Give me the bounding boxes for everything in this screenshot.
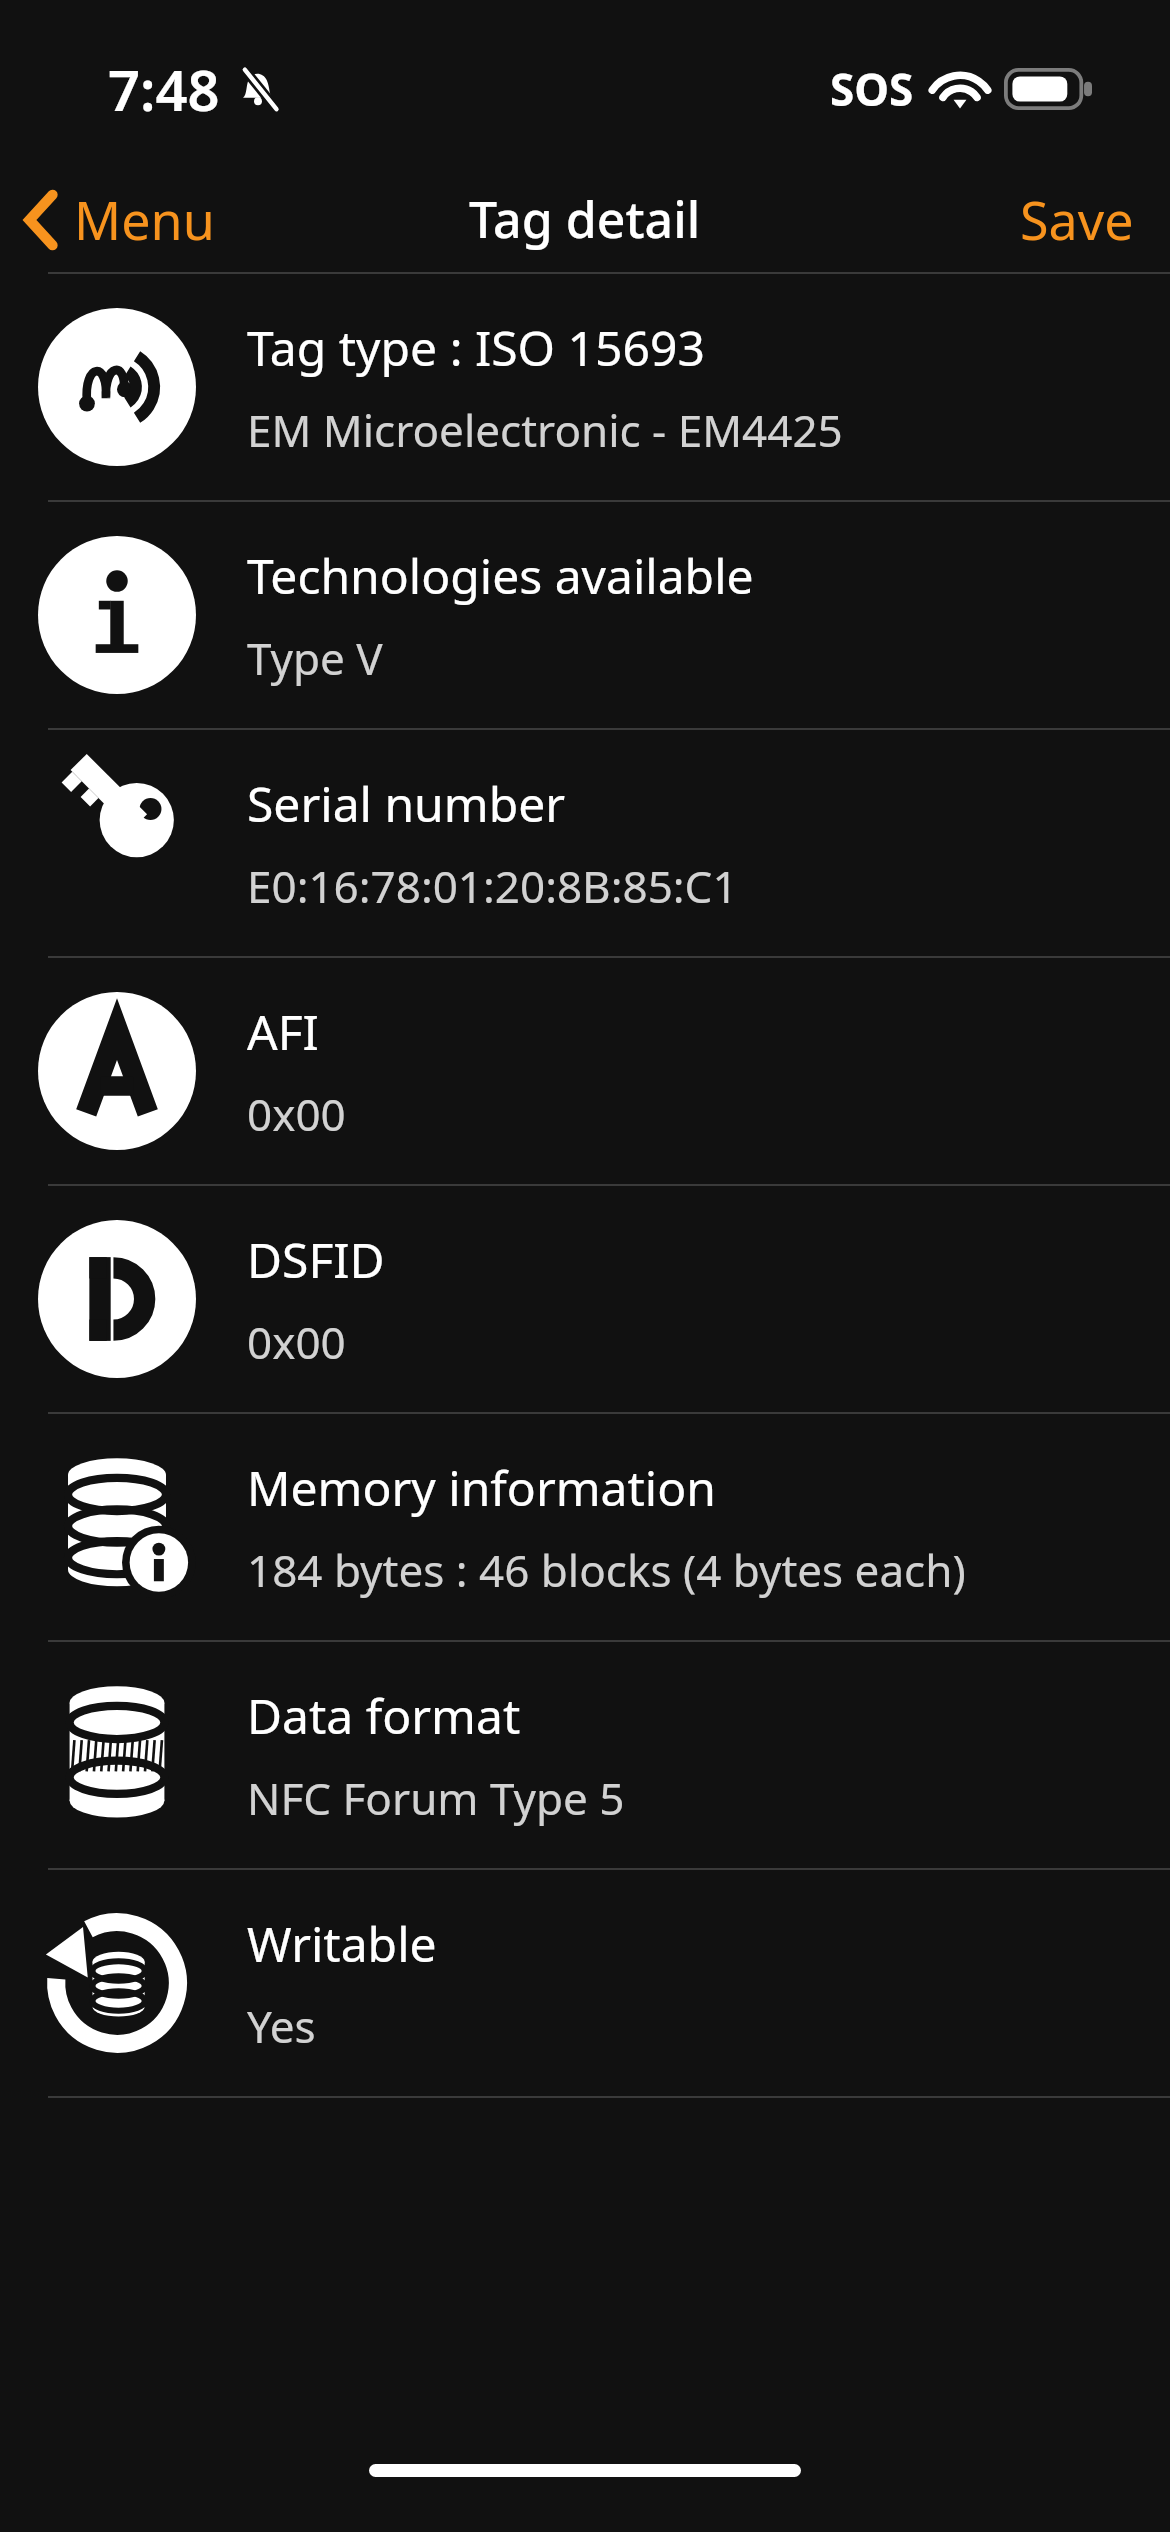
staticText: 0x00 [247,1084,346,1144]
staticText: 184 bytes : 46 blocks (4 bytes each) [247,1540,966,1600]
staticText: Type V [247,628,383,688]
button[interactable]: Menu [0,176,235,263]
button[interactable]: Memory information [0,1414,1170,1640]
staticText: Tag detail [469,185,701,253]
button[interactable]: Writable [0,1870,1170,2096]
staticText: NFC Forum Type 5 [247,1768,625,1828]
staticText: Menu [74,184,215,255]
other: Writable [32,1898,202,2068]
staticText: DSFID [247,1227,385,1292]
other: Data format [32,1670,202,1840]
staticText: Memory information [247,1455,716,1520]
staticText: Technologies available [247,543,754,608]
staticText: 0x00 [247,1312,346,1372]
staticText: Data format [247,1683,521,1748]
staticText: EM Microelectronic - EM4425 [247,400,843,460]
other: DSFID [32,1214,202,1384]
button[interactable]: DSFID [0,1186,1170,1412]
staticText: Save [1020,184,1134,255]
staticText: AFI [247,999,319,1064]
staticText: Serial number [247,771,566,836]
other: AFI [32,986,202,1156]
other: NFC tag [32,302,202,472]
button[interactable]: Information [0,502,1170,728]
button[interactable]: Data format [0,1642,1170,1868]
staticText: SOS [830,59,914,119]
button[interactable]: AFI [0,958,1170,1184]
other: Serial number [32,758,202,928]
button[interactable]: Serial number [0,730,1170,956]
staticText: Writable [247,1911,437,1976]
staticText: Tag type : ISO 15693 [247,315,705,380]
button[interactable]: NFC tag [0,274,1170,500]
other: Memory information [32,1442,202,1612]
button[interactable]: Save [984,174,1170,265]
staticText: 7:48 [108,51,220,127]
staticText: E0:16:78:01:20:8B:85:C1 [247,856,738,916]
other: Information [32,530,202,700]
staticText: Yes [247,1996,316,2056]
